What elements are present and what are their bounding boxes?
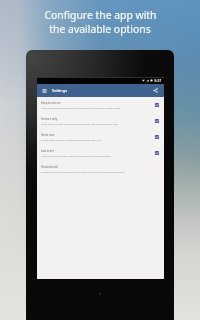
staticText: Keep screen on — [41, 101, 61, 105]
staticText: Sensors only — [41, 117, 58, 121]
staticText: Last event — [41, 149, 54, 153]
button[interactable]: Keep screen on — [37, 97, 164, 113]
button[interactable]: Show tutorial — [37, 161, 164, 177]
staticText: the available options — [49, 22, 151, 36]
staticText: Configure the app with — [44, 8, 157, 22]
staticText: Allow select collect times of the servic… — [41, 122, 118, 125]
staticText: 3:31 — [154, 78, 162, 83]
staticText: Shows data to send on the existing strea… — [41, 138, 102, 141]
staticText: Share now — [41, 133, 55, 137]
staticText: Display the tutorial shown the first tim… — [41, 170, 125, 173]
button[interactable]: Last event — [37, 145, 164, 161]
button[interactable]: Navigate up — [41, 87, 48, 94]
staticText: Show tutorial — [41, 165, 58, 169]
button[interactable]: Sensors only — [37, 113, 164, 129]
button[interactable]: Share — [152, 87, 159, 94]
staticText: Use to recover the last values of the Se… — [41, 154, 111, 157]
staticText: Settings — [52, 88, 68, 93]
button[interactable]: Share now — [37, 129, 164, 145]
staticText: Keep application alive when the device i… — [41, 106, 121, 109]
